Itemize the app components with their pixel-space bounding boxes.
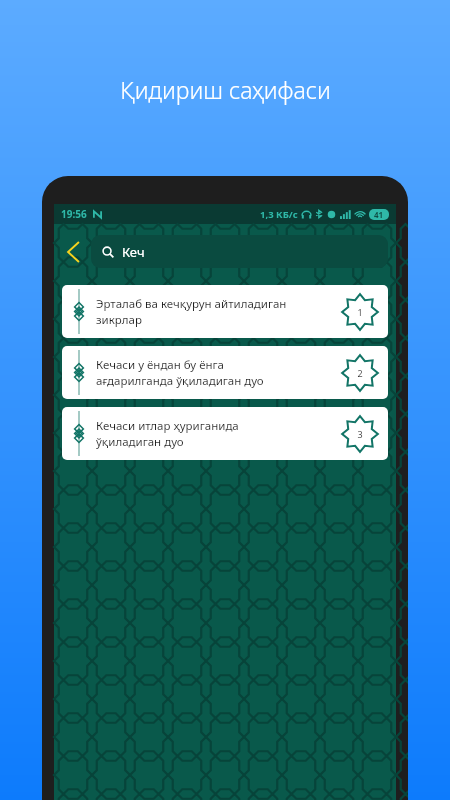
button[interactable]: Эрталаб ва кечқурун айтиладиган	[62, 285, 388, 338]
button[interactable]: Кечаси итлар ҳуриганида	[62, 407, 388, 460]
staticText: 1,3 КБ/c	[260, 208, 298, 221]
staticText: 2	[357, 367, 363, 379]
staticText: Қидириш саҳифаси	[120, 74, 331, 105]
staticText: Кеч	[122, 243, 145, 261]
button[interactable]: Back	[58, 237, 88, 267]
staticText: ўқиладиган дуо	[96, 434, 184, 450]
staticText: зикрлар	[96, 312, 142, 328]
staticText: 1	[357, 306, 363, 318]
button[interactable]: Кеч	[91, 235, 388, 268]
staticText: Эрталаб ва кечқурун айтиладиган	[96, 296, 287, 312]
staticText: 19:56	[61, 207, 87, 221]
staticText: Кечаси у ёндан бу ёнга	[96, 357, 225, 373]
staticText: 41	[374, 209, 384, 220]
staticText: ағдарилганда ўқиладиган дуо	[96, 373, 264, 389]
staticText: Кечаси итлар ҳуриганида	[96, 418, 239, 434]
staticText: 3	[357, 428, 363, 440]
button[interactable]: Кечаси у ёндан бу ёнга	[62, 346, 388, 399]
